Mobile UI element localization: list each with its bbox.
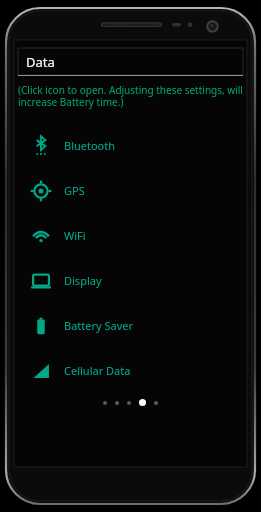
button[interactable] bbox=[154, 401, 158, 405]
staticText: Battery Saver bbox=[64, 318, 134, 333]
staticText: Data bbox=[26, 53, 55, 71]
staticText: Cellular Data bbox=[64, 363, 131, 378]
button[interactable]: WiFi bbox=[14, 213, 247, 258]
button[interactable] bbox=[115, 401, 119, 405]
staticText: GPS bbox=[64, 183, 85, 198]
button[interactable]: GPS bbox=[14, 168, 247, 213]
button[interactable] bbox=[103, 401, 107, 405]
button[interactable] bbox=[127, 401, 131, 405]
staticText: Bluetooth bbox=[64, 138, 116, 153]
button[interactable] bbox=[139, 399, 146, 406]
button[interactable]: Battery Saver bbox=[14, 303, 247, 348]
button[interactable]: Cellular Data bbox=[14, 348, 247, 393]
staticText: Display bbox=[64, 273, 102, 288]
staticText: (Click icon to open. Adjusting these set… bbox=[18, 83, 243, 109]
button[interactable]: Bluetooth bbox=[14, 123, 247, 168]
button[interactable]: Display bbox=[14, 258, 247, 303]
staticText: WiFi bbox=[64, 228, 86, 243]
